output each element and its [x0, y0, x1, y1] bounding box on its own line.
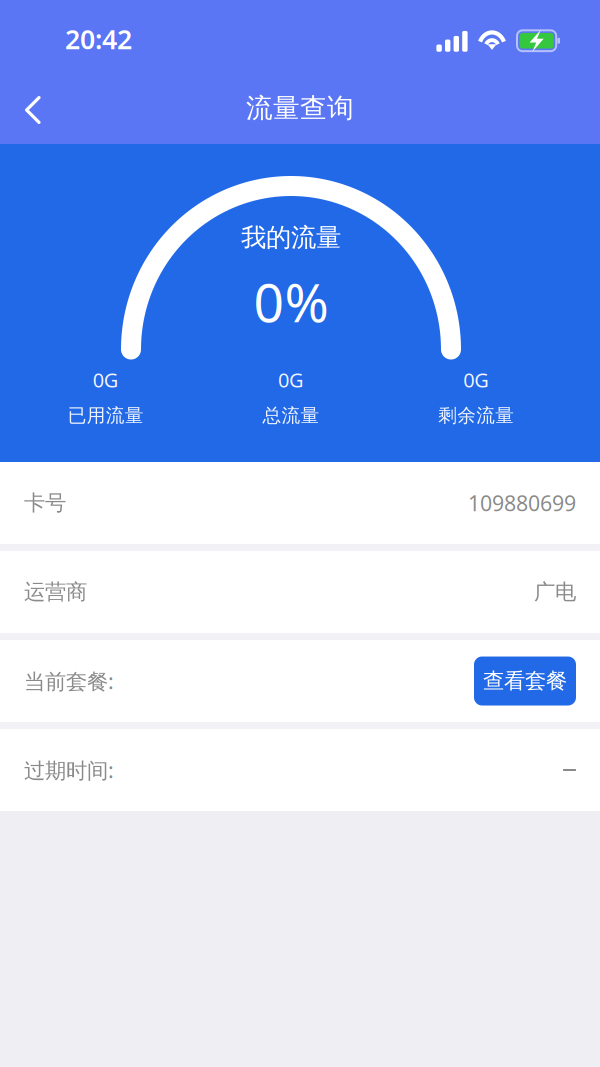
- staticText: 已用流量: [68, 404, 144, 427]
- staticText: 109880699: [468, 489, 576, 517]
- staticText: 20:42: [65, 21, 132, 57]
- staticText: 广电: [534, 579, 576, 605]
- button[interactable]: Back: [0, 78, 61, 138]
- staticText: 流量查询: [246, 92, 354, 124]
- staticText: 0G: [463, 366, 489, 393]
- button[interactable]: 查看套餐: [474, 656, 576, 705]
- staticText: 0G: [278, 366, 304, 393]
- staticText: 当前套餐:: [24, 667, 114, 695]
- staticText: 运营商: [24, 579, 87, 605]
- staticText: 过期时间:: [24, 756, 114, 784]
- staticText: 查看套餐: [483, 668, 567, 694]
- staticText: 0G: [93, 366, 119, 393]
- staticText: 我的流量: [241, 222, 341, 253]
- staticText: 0%: [253, 266, 328, 337]
- staticText: 总流量: [262, 404, 319, 427]
- staticText: 卡号: [24, 490, 66, 516]
- staticText: 剩余流量: [438, 404, 514, 427]
